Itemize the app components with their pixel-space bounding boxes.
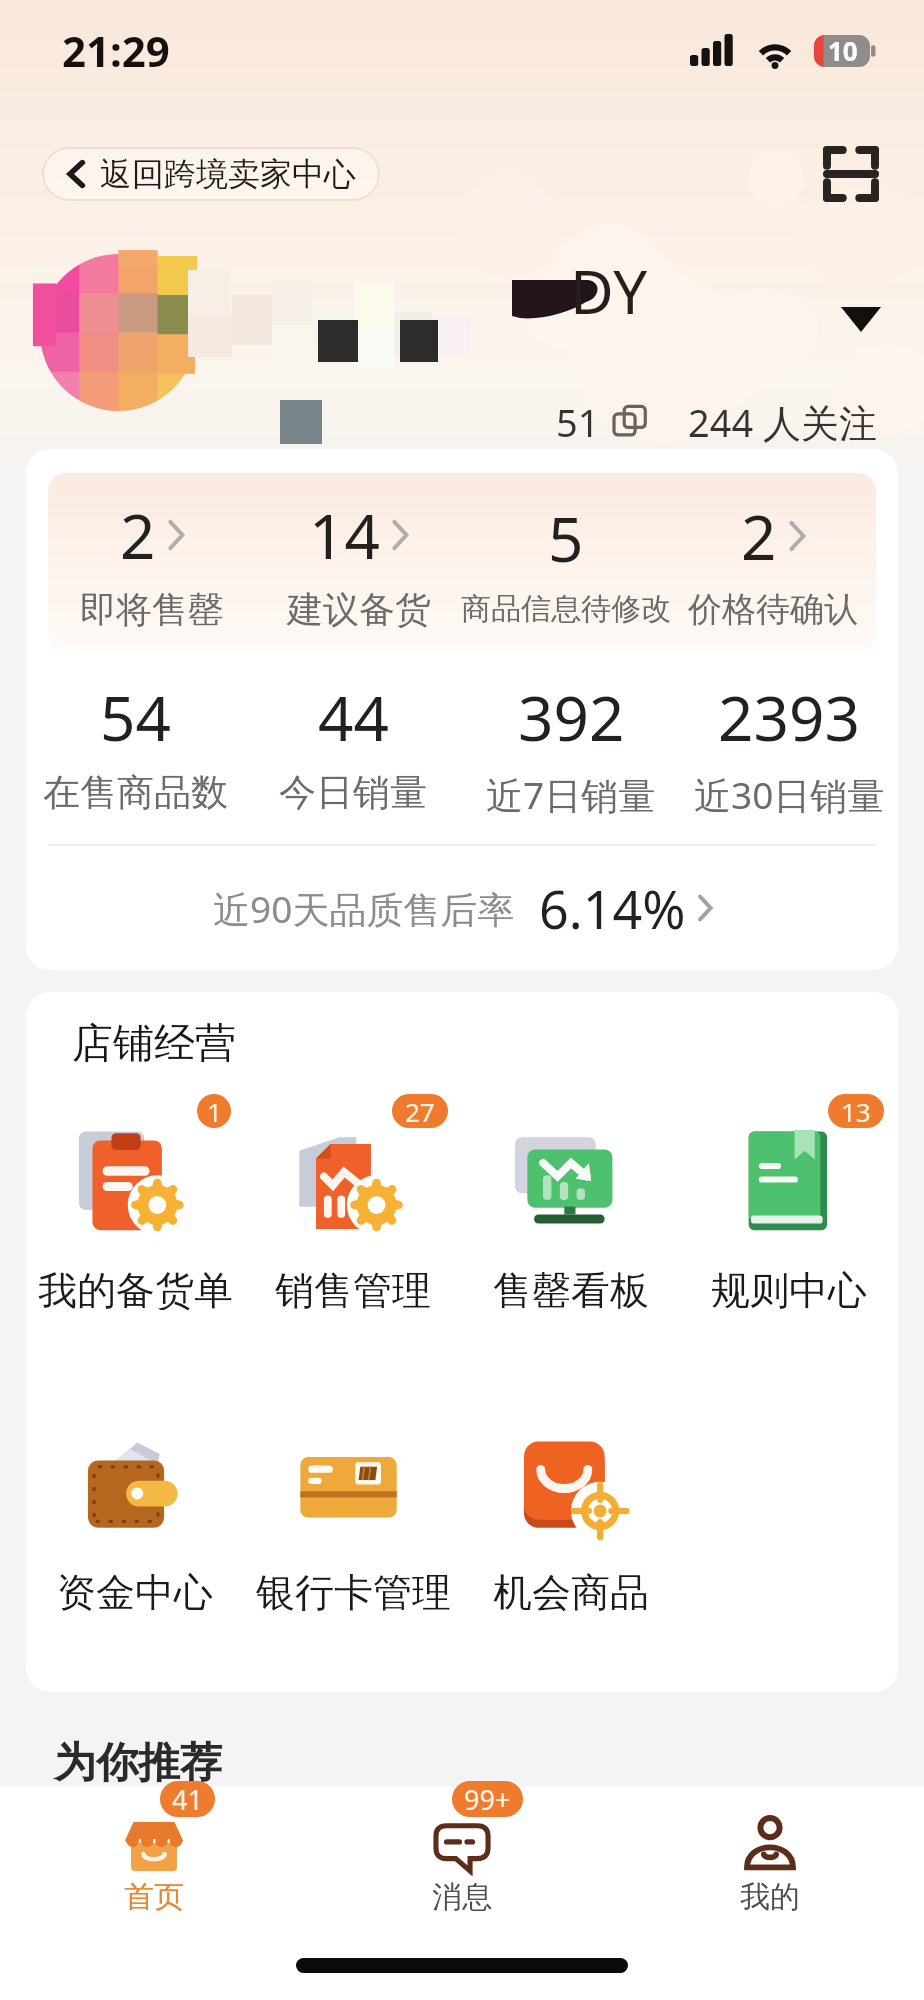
staticText: 我的 (740, 1878, 800, 1916)
staticText: 2393 (718, 675, 860, 759)
button[interactable]: 14 (255, 493, 462, 632)
staticText: 近30日销量 (694, 769, 885, 820)
staticText: 在售商品数 (43, 769, 228, 816)
button[interactable]: 13 (680, 1098, 898, 1310)
staticText: 价格待确认 (688, 588, 858, 631)
staticText: 建议备货 (287, 587, 431, 632)
button[interactable]: 51 (556, 396, 878, 448)
button[interactable]: 99+ (308, 1786, 616, 1916)
staticText: 销售管理 (275, 1266, 431, 1310)
staticText: 2 (120, 493, 156, 577)
staticText: 商品信息待修改 (461, 590, 671, 628)
staticText: 6.14% (539, 873, 686, 944)
staticText: 近7日销量 (486, 769, 656, 820)
staticText: 我的备货单 (38, 1266, 233, 1310)
staticText: 售罄看板 (493, 1266, 649, 1310)
staticText: 99+ (464, 1781, 511, 1817)
button[interactable]: 我的 (616, 1786, 924, 1916)
staticText: 今日销量 (279, 769, 427, 816)
button[interactable]: 售罄看板 (462, 1098, 680, 1310)
staticText: 244 人关注 (688, 396, 878, 448)
staticText: 5 (548, 496, 584, 580)
button[interactable]: 资金中心 (26, 1400, 244, 1612)
staticText: 即将售罄 (80, 587, 224, 632)
staticText: 2 (741, 494, 777, 578)
button[interactable]: 2393 (680, 675, 898, 820)
staticText: 44 (318, 675, 389, 759)
staticText: 店铺经营 (72, 1018, 236, 1070)
button[interactable]: 1 (26, 1098, 244, 1310)
staticText: 近90天品质售后率 (213, 883, 515, 934)
staticText: 27 (405, 1094, 435, 1128)
button[interactable]: 54 (26, 675, 244, 816)
button[interactable]: 41 (0, 1786, 308, 1916)
staticText: 13 (841, 1094, 871, 1128)
button[interactable]: 机会商品 (462, 1400, 680, 1612)
staticText: 资金中心 (57, 1568, 213, 1612)
button[interactable]: 返回跨境卖家中心 (42, 147, 380, 201)
staticText: 机会商品 (493, 1568, 649, 1612)
staticText: 14 (309, 493, 380, 577)
staticText: DY (570, 250, 648, 332)
button[interactable]: Shop avatar (40, 254, 197, 411)
button[interactable]: 5 (462, 496, 669, 628)
button[interactable]: 银行卡管理 (244, 1400, 462, 1612)
staticText: 21:29 (62, 22, 170, 78)
button[interactable]: Scan (817, 140, 885, 208)
button[interactable]: 44 (244, 675, 462, 816)
button[interactable]: 2 (48, 493, 255, 632)
button[interactable]: Expand (834, 292, 888, 346)
staticText: 返回跨境卖家中心 (100, 154, 356, 194)
staticText: 392 (518, 675, 625, 759)
button[interactable]: 392 (462, 675, 680, 820)
staticText: 首页 (124, 1878, 184, 1916)
staticText: 1 (207, 1094, 222, 1128)
button[interactable]: 27 (244, 1098, 462, 1310)
staticText: 41 (172, 1781, 203, 1817)
staticText: 51 (556, 396, 600, 448)
staticText: 消息 (432, 1878, 492, 1916)
staticText: 为你推荐 (54, 1737, 222, 1790)
staticText: 规则中心 (711, 1266, 867, 1310)
button[interactable]: 近90天品质售后率 (26, 846, 898, 970)
staticText: 54 (100, 675, 171, 759)
staticText: 10 (828, 33, 858, 68)
button[interactable]: 2 (669, 494, 876, 631)
staticText: 银行卡管理 (256, 1568, 451, 1612)
